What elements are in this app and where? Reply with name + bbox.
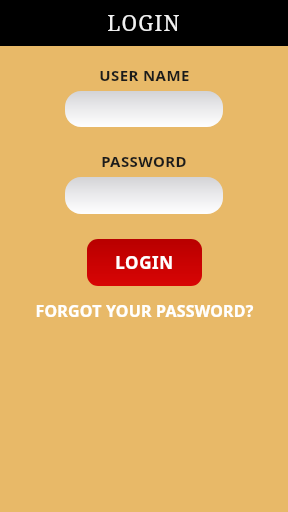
staticText: PASSWORD bbox=[101, 151, 187, 169]
button[interactable]: User name input field bbox=[65, 91, 223, 127]
button[interactable]: Password input field bbox=[65, 177, 223, 214]
staticText: USER NAME bbox=[99, 65, 190, 83]
staticText: FORGOT YOUR PASSWORD? bbox=[35, 300, 254, 322]
staticText: LOGIN bbox=[107, 9, 181, 38]
staticText: LOGIN bbox=[115, 251, 174, 274]
button[interactable]: FORGOT YOUR PASSWORD? bbox=[0, 299, 288, 323]
button[interactable]: LOGIN bbox=[87, 239, 202, 286]
